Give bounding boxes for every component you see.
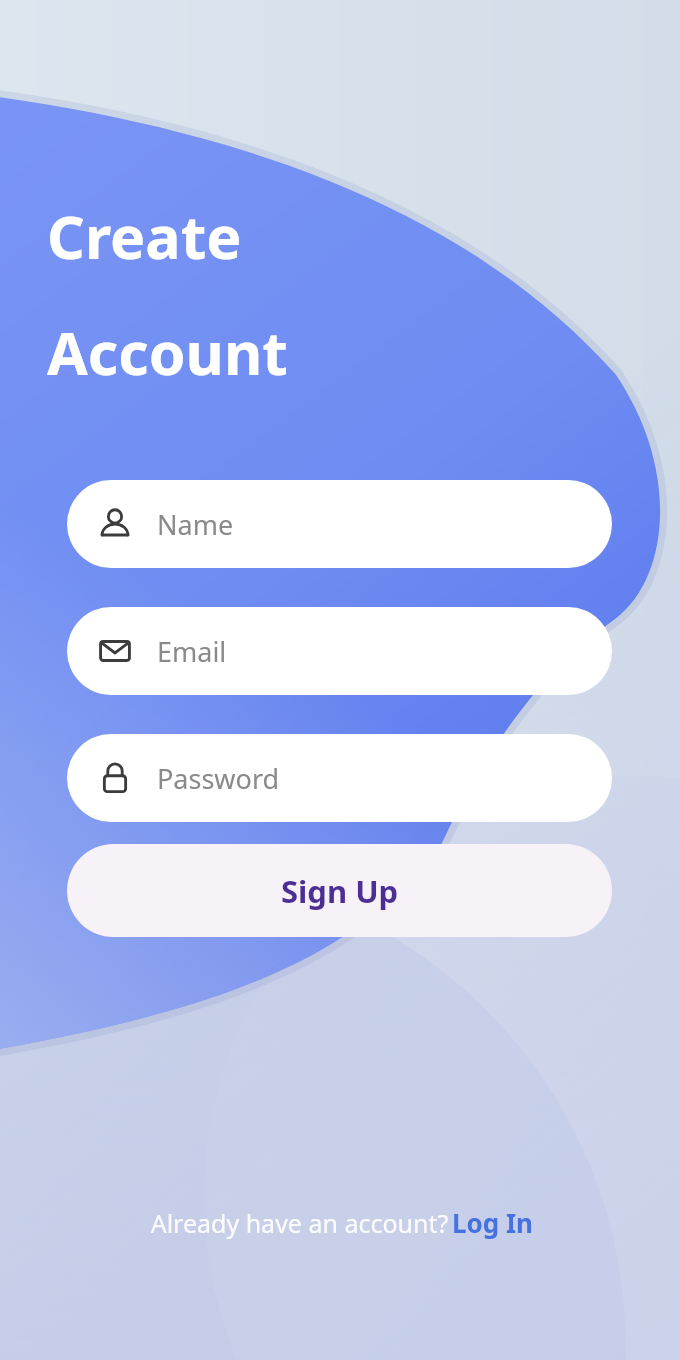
button[interactable]: Sign Up [67, 844, 612, 937]
other: Name [96, 505, 134, 543]
staticText: Name [157, 506, 234, 543]
staticText: Log In [452, 1205, 533, 1240]
button[interactable]: Password [67, 734, 612, 822]
other: Email [96, 632, 134, 670]
staticText: Create [47, 196, 242, 276]
button[interactable]: Email [67, 607, 612, 695]
button[interactable]: Name [67, 480, 612, 568]
staticText: Account [47, 312, 288, 392]
staticText: Sign Up [281, 870, 399, 912]
staticText: Already have an account? [147, 1206, 452, 1240]
button[interactable]: Already have an account? [0, 1205, 680, 1360]
staticText: Email [157, 633, 227, 670]
staticText: Password [157, 760, 280, 797]
other: Password [96, 759, 134, 797]
